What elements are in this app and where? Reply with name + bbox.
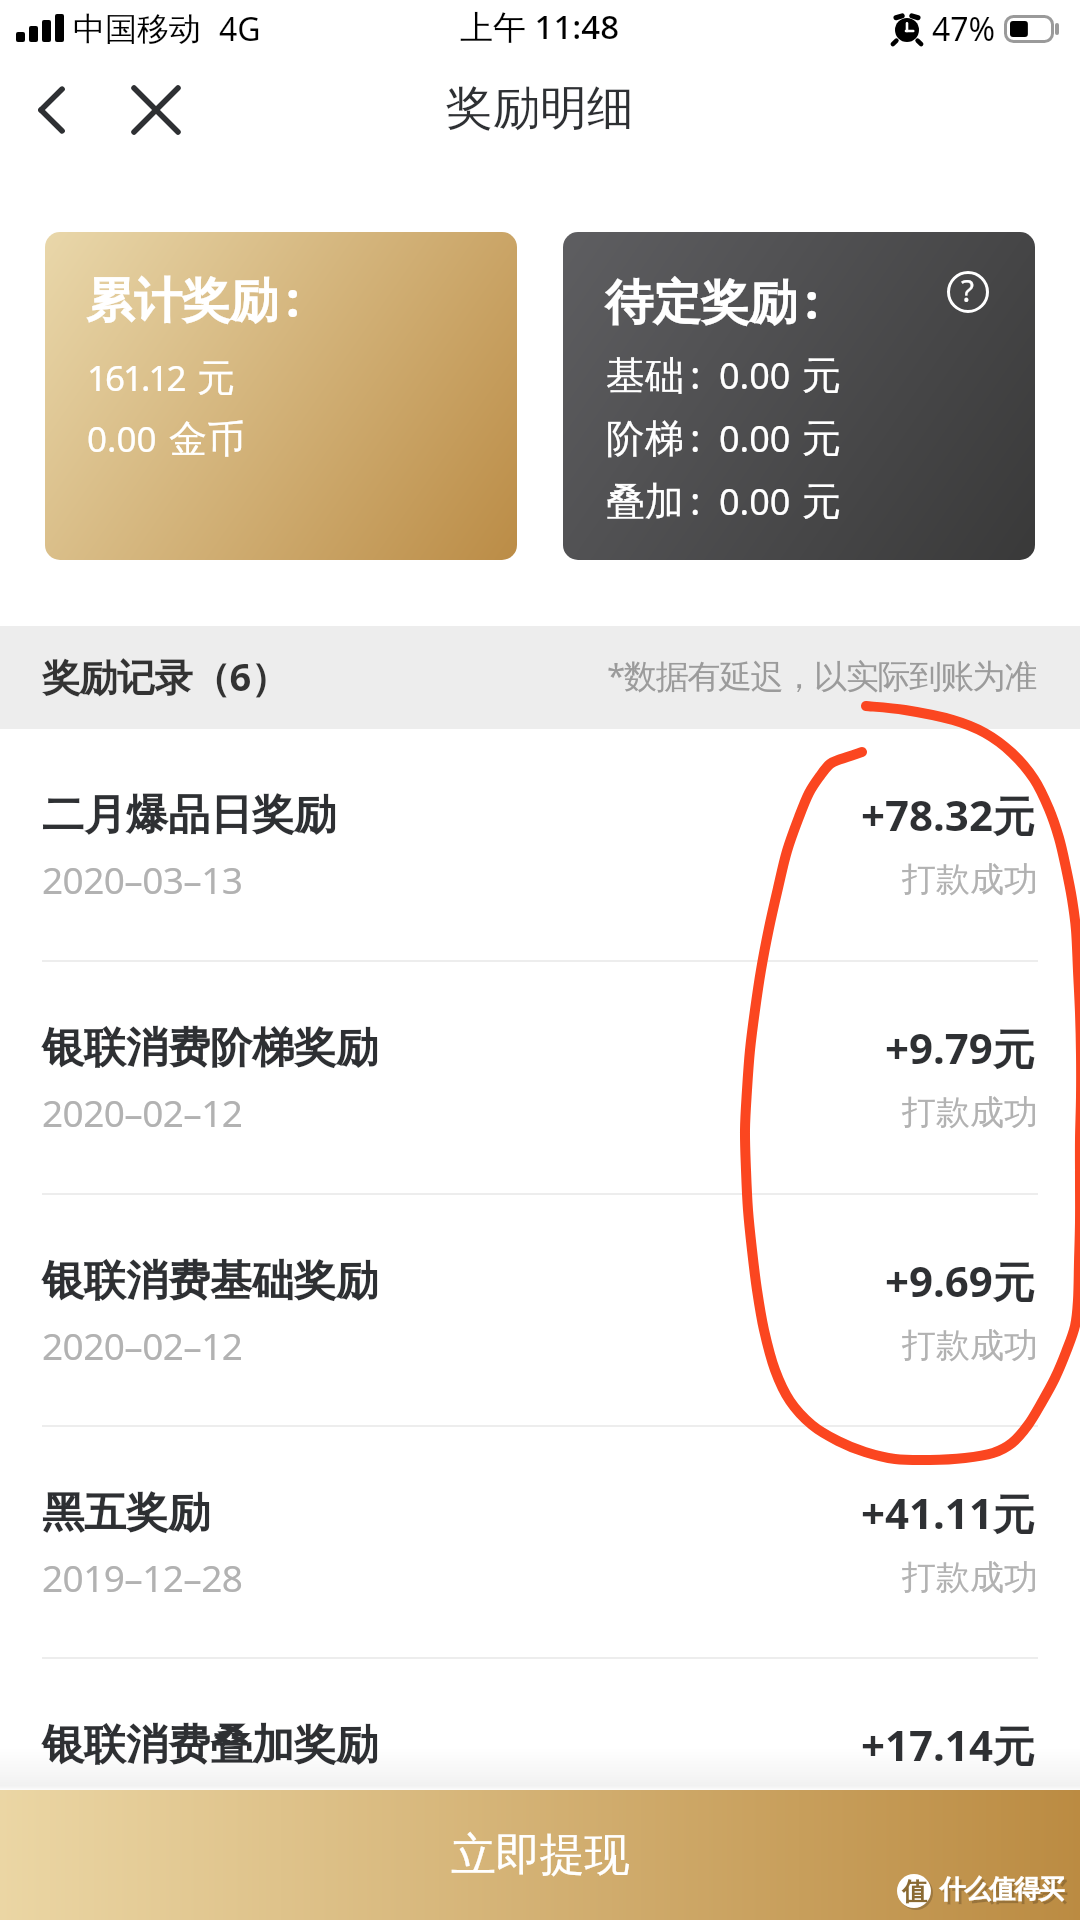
staticText: 打款成功 (902, 1556, 1038, 1599)
staticText: 累计奖励 (86, 271, 278, 331)
staticText: 奖励明细 (446, 79, 634, 138)
staticText: 黑五奖励 (42, 1487, 210, 1540)
staticText: 什么值得买 (940, 1873, 1064, 1906)
staticText: 上午 11:48 (460, 4, 620, 49)
staticText: 元 (802, 414, 841, 463)
staticText: 161.12 (87, 354, 185, 402)
button[interactable]: 黑五奖励 (0, 1427, 1080, 1657)
staticText: 4G (219, 7, 261, 51)
staticText: 中国移动 (73, 9, 201, 49)
button[interactable]: 银联消费阶梯奖励 (0, 962, 1080, 1193)
staticText: 银联消费基础奖励 (42, 1255, 378, 1308)
staticText: *数据有延迟，以实际到账为准 (607, 653, 1036, 698)
staticText: 打款成功 (902, 1788, 1038, 1831)
staticText: 2019–12–28 (42, 1784, 243, 1834)
staticText: : (286, 266, 300, 331)
staticText: 0.00 (719, 414, 791, 463)
staticText: 基础 (606, 351, 684, 400)
staticText: 打款成功 (902, 1324, 1038, 1367)
staticText: 待定奖励 (605, 273, 797, 333)
staticText: 二月爆品日奖励 (42, 789, 336, 842)
staticText: 2019–12–28 (42, 1552, 243, 1602)
staticText: 47% (932, 7, 996, 51)
button[interactable]: 立即提现 (0, 1790, 1080, 1920)
button[interactable]: 累计奖励 (45, 232, 517, 560)
staticText: ? (961, 270, 975, 311)
staticText: 立即提现 (451, 1827, 629, 1884)
staticText: +9.79元 (885, 1019, 1035, 1076)
staticText: 值 (902, 1876, 927, 1907)
staticText: : (690, 410, 701, 463)
staticText: : (690, 473, 701, 526)
staticText: +9.69元 (885, 1252, 1035, 1309)
staticText: +17.14元 (861, 1716, 1035, 1773)
button[interactable]: Help (945, 269, 991, 315)
button[interactable]: 银联消费基础奖励 (0, 1195, 1080, 1425)
staticText: : (690, 347, 701, 400)
staticText: 元 (802, 351, 841, 400)
staticText: 银联消费阶梯奖励 (42, 1022, 378, 1075)
button[interactable]: 待定奖励 (563, 232, 1035, 560)
staticText: 阶梯 (606, 414, 684, 463)
staticText: 2020–02–12 (42, 1087, 243, 1137)
staticText: 0.00 (719, 477, 791, 526)
staticText: 0.00 (87, 415, 157, 463)
staticText: 0.00 (719, 351, 791, 400)
staticText: 元 (197, 354, 235, 402)
staticText: 元 (802, 477, 841, 526)
staticText: 打款成功 (902, 858, 1038, 901)
staticText: +78.32元 (861, 786, 1035, 843)
staticText: 金币 (169, 415, 245, 463)
staticText: 打款成功 (902, 1091, 1038, 1134)
staticText: 什么值得买 (943, 1876, 1067, 1909)
staticText: 叠加 (606, 477, 684, 526)
button[interactable]: 银联消费叠加奖励 (0, 1659, 1080, 1889)
button[interactable]: 二月爆品日奖励 (0, 729, 1080, 960)
button[interactable]: Back (16, 74, 88, 146)
staticText: 2020–02–12 (42, 1320, 243, 1370)
staticText: 2020–03–13 (42, 854, 243, 904)
button[interactable]: Close (120, 74, 192, 146)
staticText: +41.11元 (861, 1484, 1035, 1541)
staticText: : (805, 268, 819, 333)
staticText: 奖励记录（6） (42, 650, 289, 702)
staticText: 银联消费叠加奖励 (42, 1719, 378, 1772)
